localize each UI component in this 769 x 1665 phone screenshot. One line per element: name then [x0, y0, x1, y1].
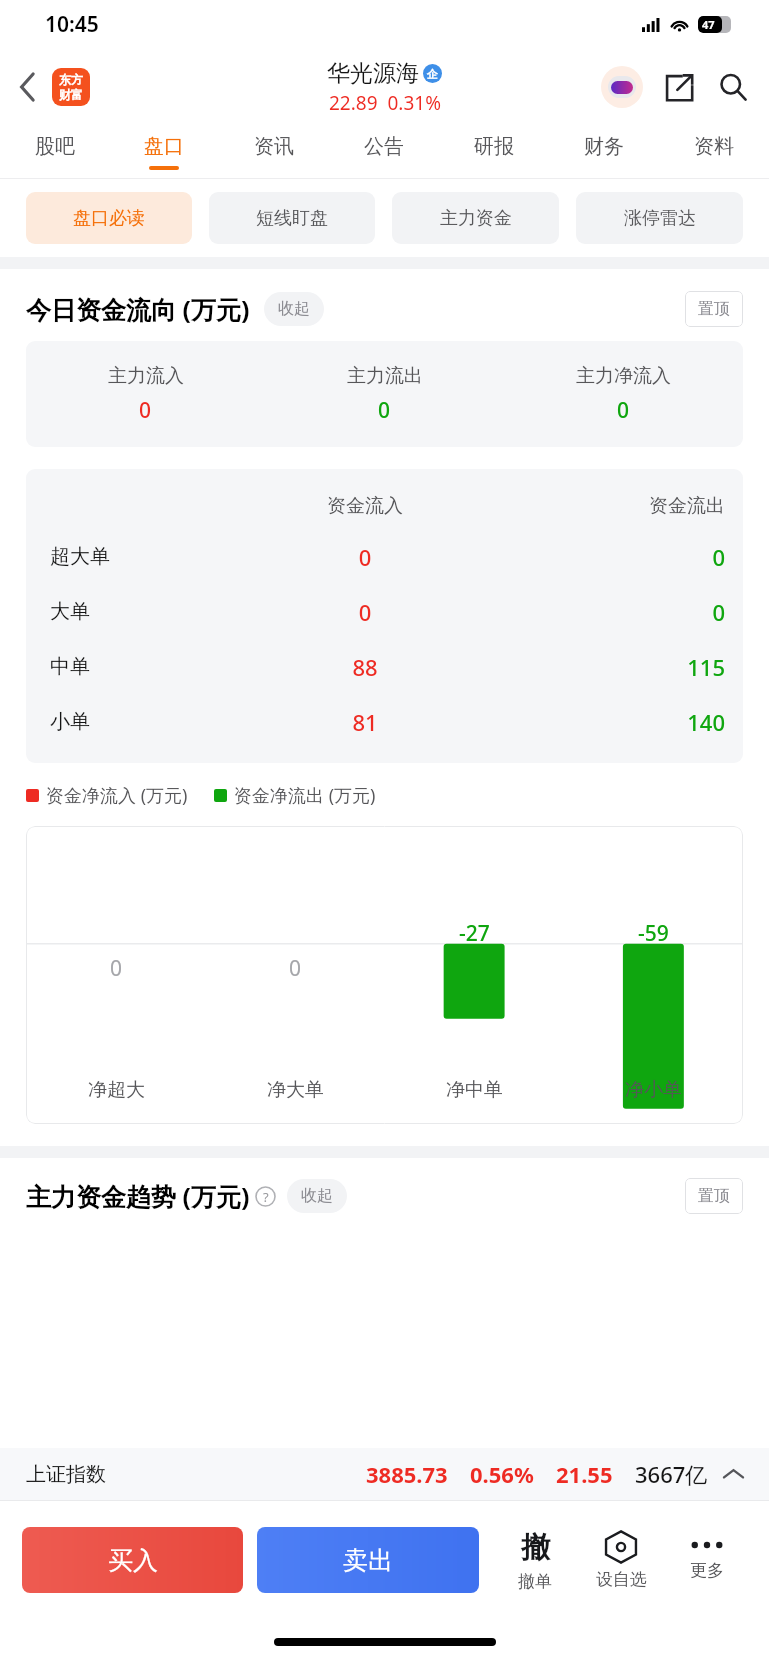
staticText: 财务: [584, 134, 624, 159]
staticText: 撤: [521, 1529, 550, 1566]
staticText: 研报: [474, 134, 514, 159]
staticText: 置顶: [698, 299, 730, 319]
button[interactable]: 大单: [26, 584, 743, 639]
staticText: 置顶: [698, 1186, 730, 1206]
staticText: 140: [491, 707, 725, 737]
staticText: 0: [239, 597, 491, 627]
button[interactable]: 买入: [22, 1527, 243, 1593]
button[interactable]: 资讯: [219, 126, 329, 178]
staticText: 3667亿: [635, 1459, 708, 1489]
button[interactable]: 主力资金: [392, 192, 559, 244]
staticText: ?: [263, 1188, 269, 1206]
staticText: 东方: [59, 72, 83, 87]
staticText: 上证指数: [26, 1462, 106, 1487]
button[interactable]: 上证指数: [0, 1448, 769, 1500]
button[interactable]: 公告: [329, 126, 439, 178]
button[interactable]: 盘口必读: [26, 192, 192, 244]
button[interactable]: Help: [254, 1185, 277, 1208]
staticText: 收起: [278, 299, 310, 319]
staticText: 0: [491, 597, 725, 627]
staticText: 0: [289, 954, 302, 983]
staticText: 88: [239, 652, 491, 682]
staticText: 21.55: [556, 1459, 613, 1489]
staticText: 主力资金: [440, 207, 512, 230]
staticText: 企: [427, 67, 438, 81]
button[interactable]: 超大单: [26, 529, 743, 584]
staticText: 净中单: [446, 1078, 503, 1102]
staticText: 财富: [59, 87, 83, 102]
staticText: 收起: [301, 1186, 333, 1206]
button[interactable]: 财务: [549, 126, 659, 178]
staticText: 0: [239, 542, 491, 572]
button[interactable]: 股吧: [0, 126, 109, 178]
staticText: 更多: [690, 1560, 724, 1581]
staticText: 股吧: [35, 134, 75, 159]
staticText: 0: [110, 954, 123, 983]
button[interactable]: 小单: [26, 694, 743, 749]
staticText: 3885.73: [366, 1459, 448, 1489]
staticText: 超大单: [50, 544, 239, 569]
staticText: 涨停雷达: [624, 207, 696, 230]
staticText: 大单: [50, 599, 239, 624]
button[interactable]: 卖出: [257, 1527, 479, 1593]
button[interactable]: 置顶: [685, 1178, 743, 1214]
staticText: 0: [378, 396, 391, 425]
button[interactable]: 研报: [439, 126, 549, 178]
staticText: 卖出: [343, 1545, 393, 1576]
staticText: 中单: [50, 654, 239, 679]
staticText: 主力资金趋势 (万元): [26, 1179, 250, 1213]
button[interactable]: 置顶: [685, 291, 743, 327]
staticText: 净超大: [88, 1078, 145, 1102]
staticText: 华光源海: [327, 59, 419, 88]
button[interactable]: 短线盯盘: [209, 192, 375, 244]
button[interactable]: 设自选: [575, 1501, 667, 1619]
staticText: -27: [459, 919, 490, 948]
staticText: 今日资金流向 (万元): [26, 292, 250, 326]
staticText: 22.89 0.31%: [329, 90, 441, 116]
button[interactable]: 涨停雷达: [576, 192, 743, 244]
button[interactable]: Back: [10, 69, 46, 105]
staticText: 81: [239, 707, 491, 737]
button[interactable]: 收起: [287, 1179, 347, 1213]
staticText: 买入: [108, 1545, 158, 1576]
staticText: 资料: [694, 134, 734, 159]
button[interactable]: 撤: [495, 1501, 575, 1619]
button[interactable]: 资料: [659, 126, 769, 178]
staticText: 净大单: [267, 1078, 324, 1102]
button[interactable]: 盘口: [109, 126, 219, 178]
staticText: 资金净流出 (万元): [234, 783, 376, 808]
staticText: 主力净流入: [576, 364, 671, 388]
staticText: 公告: [364, 134, 404, 159]
staticText: 撤单: [518, 1571, 552, 1592]
staticText: 短线盯盘: [256, 207, 328, 230]
staticText: 10:45: [45, 10, 99, 39]
button[interactable]: East Money: [52, 68, 90, 106]
staticText: 0: [491, 542, 725, 572]
staticText: 0: [139, 396, 152, 425]
staticText: 47: [702, 17, 715, 32]
staticText: 资金净流入 (万元): [46, 783, 188, 808]
button[interactable]: Search: [711, 65, 755, 109]
button[interactable]: 中单: [26, 639, 743, 694]
staticText: 主力流出: [347, 364, 423, 388]
staticText: 资金流入: [239, 494, 491, 518]
staticText: 资讯: [254, 134, 294, 159]
button[interactable]: 收起: [264, 292, 324, 326]
staticText: 0.56%: [470, 1459, 534, 1489]
button[interactable]: AI Assistant: [599, 64, 645, 110]
staticText: 小单: [50, 709, 239, 734]
staticText: 设自选: [596, 1569, 647, 1590]
staticText: -59: [638, 919, 669, 948]
staticText: 主力流入: [108, 364, 184, 388]
staticText: 盘口必读: [73, 207, 145, 230]
staticText: 净小单: [625, 1078, 682, 1102]
staticText: 资金流出: [491, 494, 725, 518]
button[interactable]: 更多: [667, 1501, 747, 1619]
staticText: 0: [617, 396, 630, 425]
button[interactable]: Share: [657, 65, 701, 109]
staticText: 115: [491, 652, 725, 682]
staticText: 盘口: [144, 134, 184, 159]
